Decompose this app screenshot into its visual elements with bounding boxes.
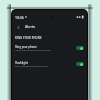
staticText: 10:36 [15, 15, 24, 20]
staticText: Alerts [25, 24, 36, 29]
staticText: Flashlight [15, 61, 28, 65]
staticText: Use an alert tone to find your phone [15, 49, 51, 52]
button[interactable]: Toggle [76, 62, 84, 66]
button[interactable]: Flashlight [12, 56, 87, 72]
staticText: RING YOUR PHONE [15, 36, 87, 40]
button[interactable]: Toggle [76, 46, 84, 50]
staticText: Blink flashlight while phone rings [15, 65, 48, 68]
button[interactable]: Back [15, 24, 21, 30]
staticText: Ring your phone [15, 45, 37, 49]
button[interactable]: Ring your phone [12, 40, 87, 56]
